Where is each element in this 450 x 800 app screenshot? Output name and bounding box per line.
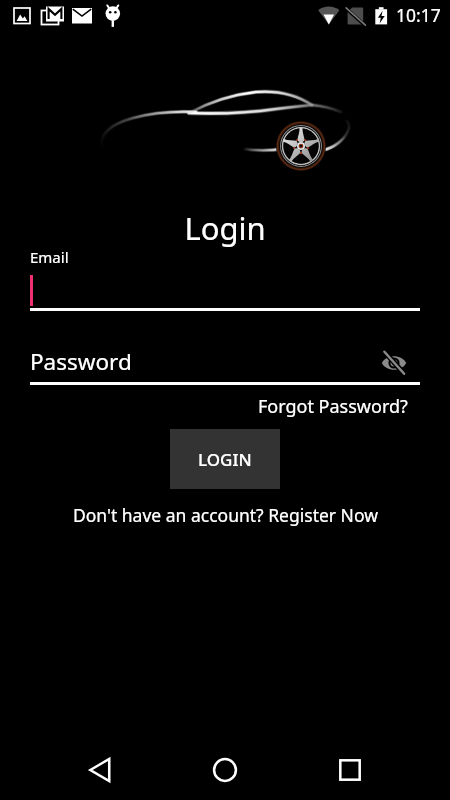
button[interactable]: Home [200, 745, 250, 795]
button[interactable]: LOGIN [170, 429, 280, 489]
staticText: Email [30, 247, 69, 267]
staticText: Login [0, 207, 450, 249]
button[interactable]: Show password [378, 347, 409, 378]
staticText: Password [30, 346, 132, 377]
button[interactable]: Forgot Password? [258, 394, 408, 419]
button[interactable]: Back [75, 745, 125, 795]
button[interactable]: Recent apps [325, 745, 375, 795]
staticText: LOGIN [198, 448, 252, 471]
button[interactable]: Don't have an account? Register Now [73, 503, 378, 527]
staticText: 10:17 [396, 3, 441, 27]
